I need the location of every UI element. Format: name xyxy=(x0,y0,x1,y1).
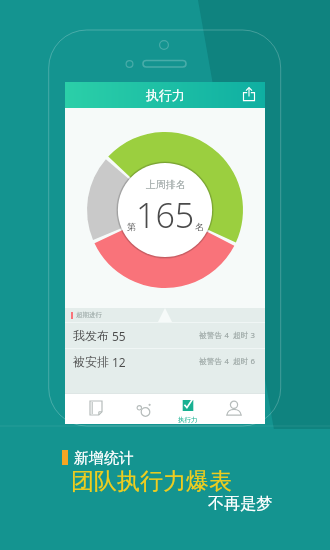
staticText: 上周排名 xyxy=(146,178,186,191)
staticText: 被警告 4 超时 6 xyxy=(199,356,256,367)
staticText: 团队执行力爆表 xyxy=(71,467,232,496)
staticText: 165 xyxy=(136,192,195,238)
staticText: 被警告 4 超时 3 xyxy=(199,330,256,341)
staticText: 我发布 xyxy=(73,328,109,343)
staticText: 第 xyxy=(127,221,136,232)
staticText: 执行力 xyxy=(178,416,198,424)
button[interactable]: 被安排 xyxy=(65,349,265,374)
staticText: 被安排 xyxy=(73,354,109,369)
staticText: 12 xyxy=(112,354,126,370)
button[interactable]: 执行力 xyxy=(165,394,211,424)
button[interactable]: Profile xyxy=(211,394,257,424)
staticText: 不再是梦 xyxy=(208,494,272,514)
button[interactable]: Notes xyxy=(73,394,119,424)
staticText: 55 xyxy=(112,328,126,344)
button[interactable]: Share xyxy=(239,85,259,105)
button[interactable]: 我发布 xyxy=(65,323,265,348)
staticText: 名 xyxy=(195,221,204,232)
staticText: 超期进行 xyxy=(76,311,102,319)
staticText: 新增统计 xyxy=(74,449,134,468)
button[interactable]: Discover xyxy=(119,394,165,424)
staticText: 执行力 xyxy=(146,87,185,103)
